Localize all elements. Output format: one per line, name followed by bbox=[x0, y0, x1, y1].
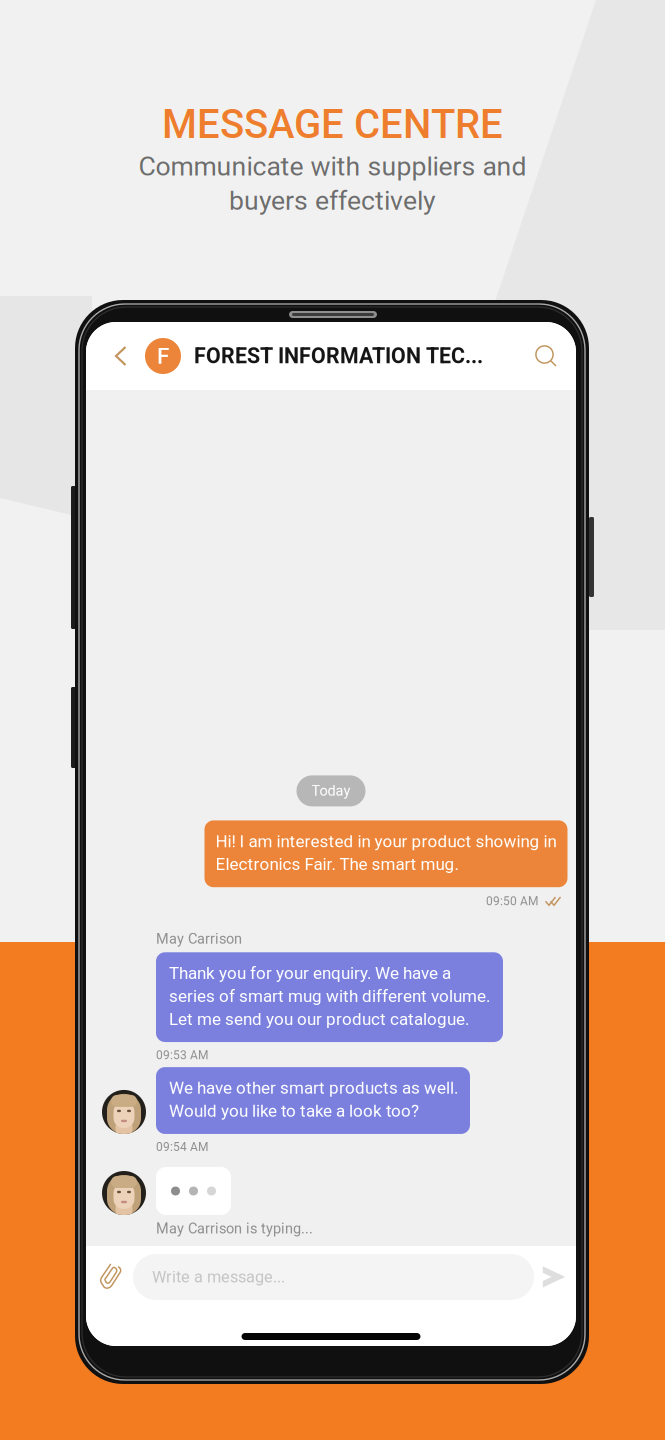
staticText: Today bbox=[311, 782, 350, 799]
staticText: Communicate with suppliers and bbox=[138, 151, 526, 182]
staticText: 09:54 AM bbox=[156, 1140, 208, 1154]
staticText: F bbox=[157, 343, 169, 369]
staticText: Thank you for your enquiry. We have a se… bbox=[169, 963, 490, 1029]
staticText: MESSAGE CENTRE bbox=[162, 101, 503, 148]
button[interactable]: Back bbox=[96, 331, 145, 381]
button[interactable]: Send bbox=[534, 1248, 574, 1306]
button[interactable]: Attach file bbox=[89, 1248, 133, 1306]
staticText: May Carrison is typing... bbox=[156, 1220, 313, 1237]
staticText: May Carrison bbox=[156, 930, 242, 947]
staticText: Write a message... bbox=[152, 1267, 285, 1286]
staticText: Hi! I am interested in your product show… bbox=[215, 831, 556, 874]
staticText: buyers effectively bbox=[229, 185, 436, 216]
button[interactable]: Write a message... bbox=[133, 1254, 534, 1300]
staticText: 09:53 AM bbox=[156, 1048, 208, 1062]
staticText: We have other smart products as well. Wo… bbox=[169, 1078, 458, 1121]
staticText: 09:50 AM bbox=[486, 894, 538, 908]
button[interactable]: Company profile bbox=[145, 338, 181, 374]
staticText: FOREST INFORMATION TEC... bbox=[194, 343, 483, 368]
button[interactable]: Search bbox=[524, 331, 568, 381]
